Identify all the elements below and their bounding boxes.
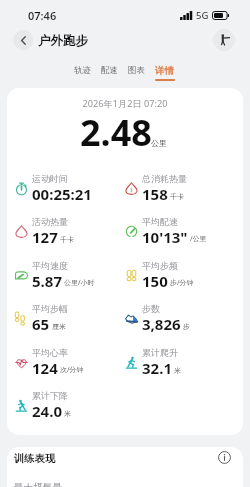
button[interactable]: 平均配速 [125,216,235,246]
staticText: 配速 [101,65,118,76]
staticText: 32.1 [142,358,172,377]
button[interactable]: 活动热量 [15,216,125,246]
staticText: 150 [142,271,168,290]
staticText: 步/分钟 [170,278,194,288]
staticText: 2.48 [80,108,152,157]
button[interactable]: 详情 [150,65,180,81]
staticText: 步数 [142,303,160,314]
button[interactable]: 平均心率 [15,347,125,377]
staticText: 厘米 [52,322,66,331]
staticText: 65 [32,314,50,333]
button[interactable]: Back [13,30,33,50]
staticText: 轨迹 [74,65,91,76]
staticText: 24.0 [32,401,62,420]
staticText: 米 [174,366,181,375]
staticText: /公里 [190,234,207,244]
button[interactable]: 轨迹 [69,65,96,81]
staticText: 5G [196,9,209,22]
staticText: 平均步幅 [32,303,68,314]
button[interactable]: Info [216,449,233,466]
button[interactable]: 平均速度 [15,260,125,290]
staticText: 平均速度 [32,260,68,271]
button[interactable]: Sport type [213,29,235,51]
button[interactable]: 运动时间 [15,173,125,203]
staticText: 3,826 [142,314,181,333]
staticText: 124 [32,358,58,377]
staticText: 训练表现 [14,452,56,465]
staticText: 运动时间 [32,173,68,184]
staticText: 平均心率 [32,347,68,358]
staticText: 00:25:21 [32,184,92,203]
staticText: 累计下降 [32,390,68,401]
staticText: 07:46 [28,8,57,23]
staticText: 图表 [128,65,145,76]
staticText: 户外跑步 [38,33,88,49]
staticText: 详情 [155,65,175,77]
button[interactable]: 平均步幅 [15,303,125,333]
staticText: 千卡 [170,192,184,201]
staticText: 平均步频 [142,260,178,271]
button[interactable]: 平均步频 [125,260,235,290]
staticText: 累计爬升 [142,347,178,358]
staticText: 次/分钟 [60,365,84,375]
staticText: 158 [142,184,168,203]
staticText: 总消耗热量 [142,173,187,184]
staticText: 步 [183,322,190,331]
staticText: 米 [64,409,71,418]
staticText: 公里/小时 [64,278,95,288]
staticText: 5.87 [32,271,62,290]
button[interactable]: 总消耗热量 [125,173,235,203]
staticText: 最大摄氧量 [14,482,62,487]
staticText: 2026年1月2日 07:20 [7,97,243,110]
button[interactable]: 累计下降 [15,390,125,420]
staticText: 公里 [151,138,167,148]
button[interactable]: 步数 [125,303,235,333]
staticText: 活动热量 [32,216,68,227]
button[interactable]: 累计爬升 [125,347,235,377]
button[interactable]: 配速 [96,65,123,81]
staticText: 平均配速 [142,216,178,227]
staticText: 千卡 [60,235,74,244]
button[interactable]: 图表 [123,65,150,81]
staticText: 10'13" [142,227,188,246]
staticText: 127 [32,227,58,246]
